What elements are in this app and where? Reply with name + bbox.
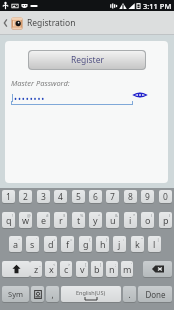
staticText: ` (36, 237, 38, 242)
staticText: l (153, 238, 156, 250)
staticText: * (133, 213, 136, 218)
button[interactable]: 4 (54, 190, 67, 203)
button[interactable]: 2 (19, 190, 32, 203)
staticText: % (80, 213, 84, 218)
button[interactable]: v (76, 261, 88, 277)
staticText: + (53, 237, 56, 242)
staticText: Registration (27, 17, 76, 29)
staticText: ( (151, 213, 153, 218)
button[interactable]: p (159, 212, 172, 228)
button[interactable]: g (79, 236, 92, 252)
staticText: 1 (6, 191, 11, 203)
button[interactable]: d (44, 236, 57, 252)
button[interactable]: Sym (2, 286, 29, 302)
button[interactable]: c (60, 261, 72, 277)
button[interactable]: Done (138, 286, 172, 302)
staticText: m (123, 263, 132, 275)
button[interactable]: t (72, 212, 85, 228)
staticText: Sym (8, 289, 23, 299)
button[interactable]: i (124, 212, 137, 228)
button[interactable]: 7 (106, 190, 119, 203)
staticText: [ (85, 262, 87, 267)
staticText: Master Password: (11, 78, 70, 88)
button[interactable]: w (19, 212, 32, 228)
staticText: # (46, 213, 49, 218)
button[interactable]: u (106, 212, 119, 228)
button[interactable]: k (131, 236, 144, 252)
staticText: Done (145, 289, 166, 300)
staticText: ~ (18, 237, 21, 242)
staticText: & (115, 213, 118, 218)
staticText: s (30, 238, 35, 250)
staticText: w (22, 214, 30, 226)
staticText: < (53, 262, 56, 267)
staticText: a (13, 238, 19, 250)
staticText: g (83, 238, 89, 250)
staticText: 3:11 PM (143, 1, 172, 11)
staticText: 2 (23, 191, 28, 203)
staticText: ; (115, 262, 117, 267)
staticText: b (94, 263, 100, 275)
button[interactable]: z (30, 261, 42, 277)
button[interactable]: f (61, 236, 74, 252)
staticText: z (34, 263, 39, 275)
button[interactable]: s (26, 236, 39, 252)
staticText: ! (12, 213, 14, 218)
button[interactable]: a (9, 236, 22, 252)
staticText: = (70, 237, 73, 242)
button[interactable]: Backspace (143, 261, 172, 277)
button[interactable]: Register (29, 51, 145, 69)
staticText: n (109, 263, 115, 275)
staticText: { (89, 237, 91, 242)
button[interactable]: h (96, 236, 109, 252)
staticText: f (66, 238, 70, 250)
staticText: $ (63, 213, 66, 218)
button[interactable]: q (2, 212, 15, 228)
staticText: ^ (98, 213, 101, 218)
button[interactable]: r (54, 212, 67, 228)
button[interactable]: o (141, 212, 154, 228)
staticText: o (145, 214, 151, 226)
button[interactable]: 8 (124, 190, 137, 203)
staticText: 7 (110, 191, 115, 203)
staticText: , (51, 289, 54, 300)
staticText: " (141, 237, 143, 242)
staticText: 6 (93, 191, 98, 203)
button[interactable]: . (123, 286, 136, 302)
staticText: i (129, 214, 132, 226)
staticText: ) (169, 213, 171, 218)
staticText: 4 (58, 191, 63, 203)
button[interactable]: Navigate up (0, 11, 10, 35)
staticText: 3 (41, 191, 46, 203)
button[interactable]: 1 (2, 190, 15, 203)
staticText: . (128, 289, 131, 300)
button[interactable]: n (106, 261, 118, 277)
staticText: k (135, 238, 140, 250)
staticText: | (157, 237, 160, 242)
button[interactable]: e (37, 212, 50, 228)
staticText: e (41, 214, 47, 226)
button[interactable]: b (91, 261, 103, 277)
button[interactable]: y (89, 212, 102, 228)
button[interactable]: m (121, 261, 133, 277)
button[interactable]: , (46, 286, 59, 302)
button[interactable]: x (45, 261, 57, 277)
button[interactable]: 3 (37, 190, 50, 203)
button[interactable]: Show password (131, 87, 149, 103)
button[interactable]: j (113, 236, 126, 252)
button[interactable]: l (148, 236, 161, 252)
staticText: p (163, 214, 169, 226)
button[interactable]: 9 (141, 190, 154, 203)
button[interactable]: 0 (159, 190, 172, 203)
button[interactable]: 6 (89, 190, 102, 203)
staticText: ] (100, 262, 102, 267)
staticText: Register (71, 54, 104, 66)
staticText: 9 (145, 191, 150, 203)
button[interactable]: Voice input (31, 286, 44, 302)
staticText: @ (27, 213, 31, 218)
button[interactable]: 5 (72, 190, 85, 203)
staticText: y (93, 214, 98, 226)
staticText: d (48, 238, 54, 250)
button[interactable]: English(US) (61, 286, 121, 302)
button[interactable]: Shift (2, 261, 30, 277)
